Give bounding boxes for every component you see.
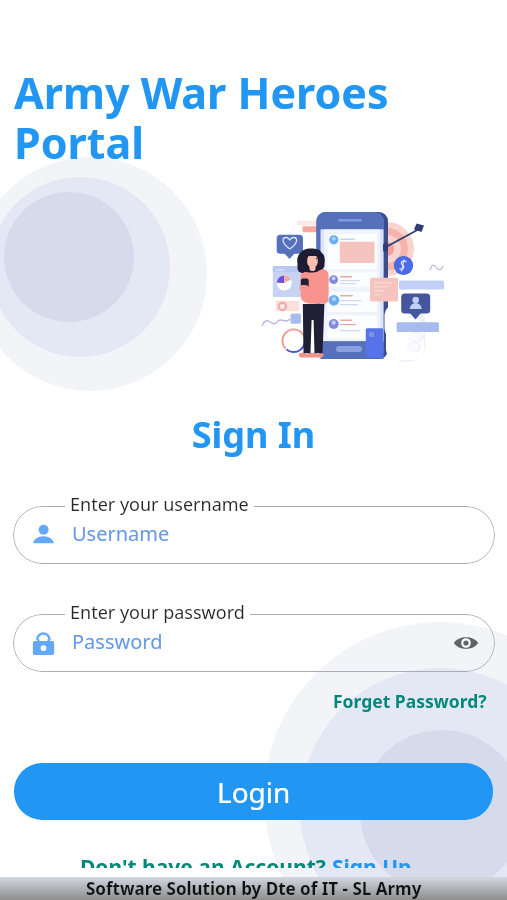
- staticText: Password: [72, 628, 163, 655]
- staticText: Sign In: [0, 410, 507, 459]
- staticText: Software Solution by Dte of IT - SL Army: [86, 877, 422, 900]
- button[interactable]: Forget Password?: [333, 689, 507, 713]
- button[interactable]: Login: [14, 763, 493, 820]
- button[interactable]: Password: [13, 614, 495, 672]
- button[interactable]: Username: [13, 506, 495, 564]
- staticText: Army War Heroes Portal: [14, 63, 389, 172]
- staticText: Don't have an Account?: [80, 853, 332, 868]
- staticText: Login: [217, 773, 291, 811]
- staticText: Enter your username: [70, 492, 249, 517]
- staticText: Username: [72, 520, 170, 547]
- staticText: Enter your password: [70, 600, 245, 625]
- button[interactable]: Show password: [451, 628, 481, 658]
- button[interactable]: Sign Up: [332, 853, 412, 868]
